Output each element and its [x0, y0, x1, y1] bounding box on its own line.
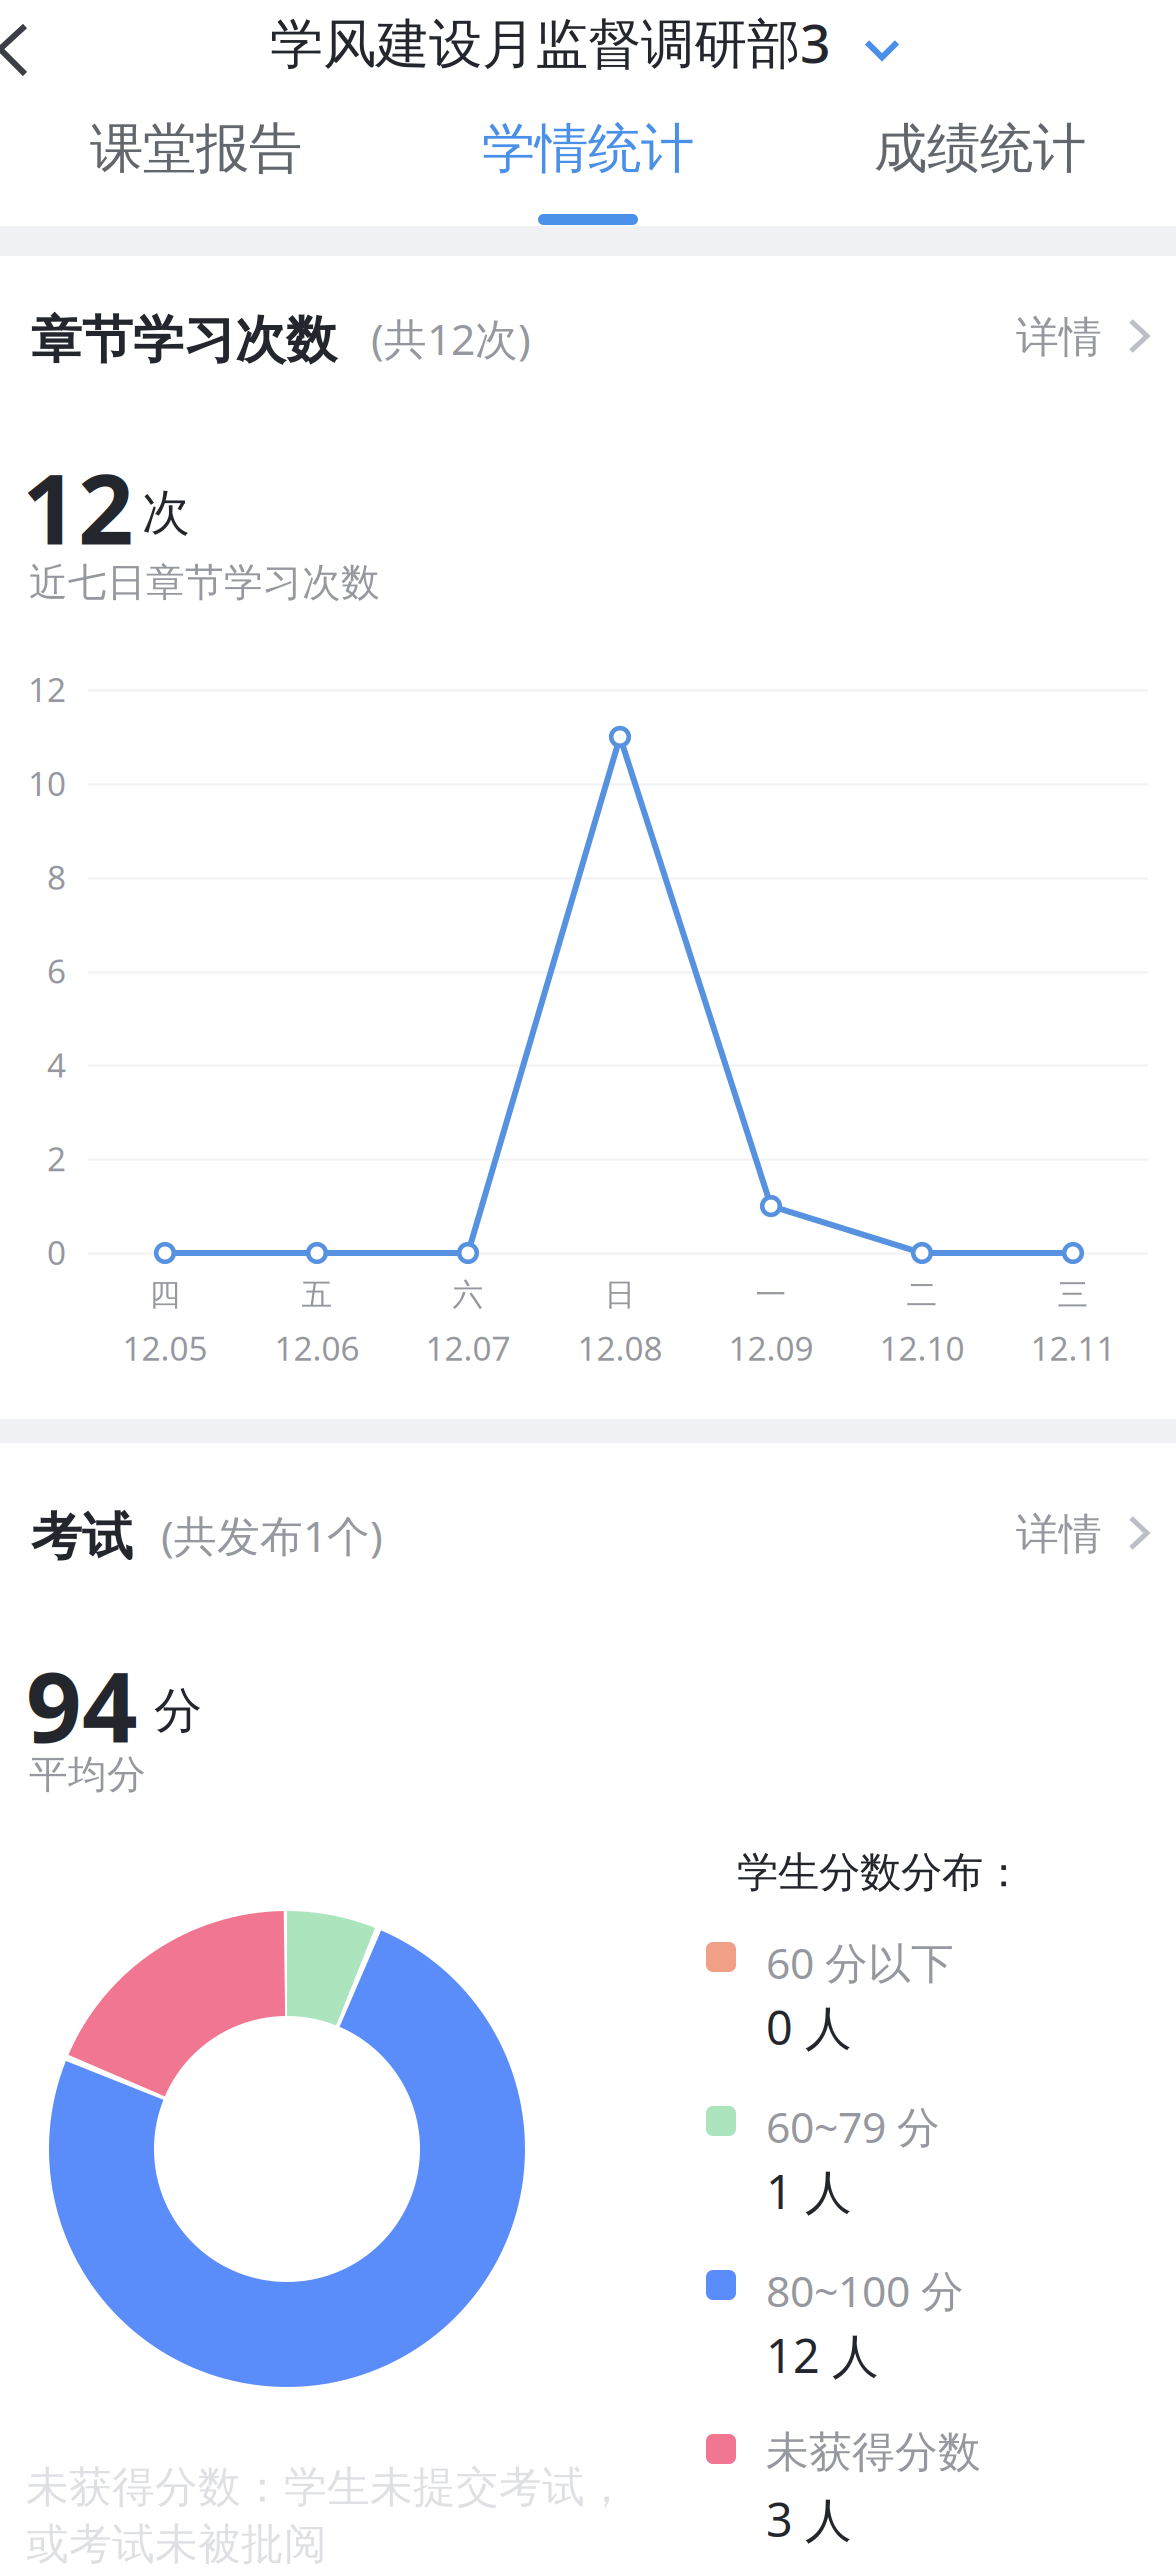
staticText: 1 人 [766, 2160, 852, 2222]
staticText: 详情 [1016, 1508, 1102, 1560]
staticText: (共发布1个) [161, 1507, 383, 1564]
button[interactable]: 成绩统计 [784, 106, 1176, 226]
button[interactable]: 学风建设月监督调研部3 [270, 7, 900, 78]
staticText: 五 [301, 1276, 332, 1314]
staticText: 60~79 分 [766, 2098, 940, 2155]
button[interactable]: 考试 [0, 1506, 1176, 1568]
button[interactable]: 章节学习次数 [0, 309, 1176, 371]
staticText: 平均分 [29, 1751, 146, 1798]
staticText: 12.10 [879, 1326, 964, 1370]
staticText: 3 人 [766, 2488, 852, 2550]
staticText: 次 [142, 483, 190, 542]
staticText: 分 [154, 1681, 202, 1740]
button[interactable]: 课堂报告 [0, 106, 392, 226]
staticText: 二 [906, 1276, 937, 1314]
staticText: 一 [755, 1276, 786, 1314]
button[interactable]: 学情统计 [392, 106, 784, 226]
staticText: 详情 [1016, 311, 1102, 363]
staticText: 8 [47, 855, 66, 899]
staticText: 12.05 [122, 1326, 207, 1370]
staticText: 2 [47, 1136, 66, 1180]
staticText: 12.09 [728, 1326, 813, 1370]
staticText: 12 [22, 442, 134, 571]
staticText: 未获得分数 [766, 2426, 981, 2478]
staticText: 未获得分数：学生未提交考试， [26, 2461, 628, 2513]
staticText: 10 [28, 761, 66, 805]
staticText: 4 [47, 1042, 66, 1087]
staticText: 学情统计 [482, 116, 694, 181]
staticText: 考试 [31, 1506, 133, 1568]
staticText: 三 [1057, 1276, 1088, 1314]
staticText: 近七日章节学习次数 [29, 559, 380, 606]
staticText: 或考试未被批阅 [26, 2518, 327, 2568]
staticText: 12.06 [274, 1326, 359, 1370]
staticText: 94 [26, 1640, 138, 1769]
staticText: 四 [149, 1276, 180, 1314]
staticText: 12.11 [1030, 1326, 1115, 1370]
staticText: 课堂报告 [90, 116, 302, 181]
staticText: 80~100 分 [766, 2262, 964, 2319]
staticText: 12 人 [766, 2324, 879, 2386]
staticText: 学风建设月监督调研部3 [270, 7, 831, 78]
staticText: (共12次) [371, 310, 531, 367]
staticText: 12.07 [425, 1326, 510, 1370]
staticText: 章节学习次数 [31, 309, 337, 371]
staticText: 12 [28, 667, 66, 711]
staticText: 成绩统计 [874, 116, 1086, 181]
staticText: 0 [47, 1230, 66, 1274]
staticText: 六 [452, 1276, 483, 1314]
staticText: 日 [604, 1276, 635, 1314]
staticText: 学生分数分布： [737, 1847, 1024, 1898]
staticText: 60 分以下 [766, 1934, 954, 1991]
button[interactable]: 返回 [0, 6, 100, 94]
staticText: 12.08 [577, 1326, 662, 1370]
staticText: 6 [47, 948, 66, 993]
staticText: 0 人 [766, 1996, 852, 2058]
